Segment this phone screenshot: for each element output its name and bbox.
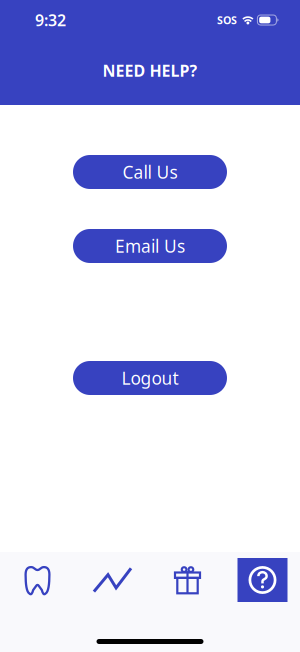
- staticText: Call Us: [122, 160, 177, 183]
- staticText: Email Us: [115, 234, 185, 257]
- button[interactable]: Rewards: [150, 558, 225, 602]
- button[interactable]: Progress: [75, 558, 150, 602]
- button[interactable]: My Teeth: [0, 558, 75, 602]
- staticText: Logout: [121, 366, 178, 389]
- button[interactable]: Logout: [73, 361, 227, 395]
- button[interactable]: Call Us: [73, 155, 227, 189]
- button[interactable]: Need Help: [225, 558, 300, 602]
- staticText: NEED HELP?: [102, 60, 197, 81]
- staticText: 9:32: [35, 9, 66, 31]
- staticText: SOS: [217, 13, 237, 27]
- button[interactable]: Email Us: [73, 229, 227, 263]
